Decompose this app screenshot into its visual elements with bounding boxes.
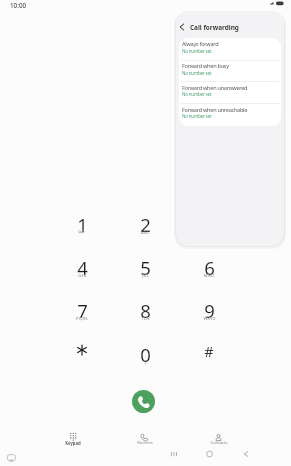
staticText: Keypad [65,440,81,446]
button[interactable] [66,338,98,362]
staticText: # [204,341,214,361]
staticText: WXYZ [203,315,216,321]
button[interactable] [129,254,161,278]
staticText: 7 [77,298,88,318]
staticText: No number set [182,48,212,54]
button[interactable] [193,297,225,321]
staticText: 1 [77,212,88,232]
button[interactable] [179,104,281,126]
button[interactable] [129,297,161,321]
staticText: 0 [140,342,151,362]
button[interactable] [66,297,98,321]
staticText: Forward when unanswered [182,84,248,92]
staticText: 6 [204,255,215,275]
staticText: 2 [140,212,151,232]
staticText: Recents [137,440,153,446]
staticText: TUV [141,315,150,321]
staticText: JKL [142,272,149,278]
button[interactable] [179,60,281,82]
staticText: + [144,359,147,365]
button[interactable] [192,338,224,362]
staticText: 9 [204,298,215,318]
button[interactable] [66,254,98,278]
button[interactable] [179,82,281,104]
button[interactable] [176,17,284,37]
button[interactable] [179,38,281,60]
staticText: GHI [78,272,87,278]
button[interactable] [66,211,98,235]
staticText: Forward when busy [182,62,229,70]
button[interactable] [132,390,155,413]
button[interactable] [239,448,255,461]
staticText: 5 [140,255,151,275]
button[interactable] [129,211,161,235]
staticText: Contacts [210,440,228,446]
staticText: 8 [140,298,151,318]
button[interactable] [202,448,218,461]
button[interactable] [193,254,225,278]
staticText: 10:00 [10,1,27,10]
staticText: No number set [182,91,212,97]
staticText: PQRS [76,315,88,321]
button[interactable] [128,429,162,448]
staticText: No number set [182,70,212,76]
staticText: Forward when unreachable [182,106,248,114]
staticText: ABC [141,229,150,235]
staticText: Call forwarding [190,23,239,32]
button[interactable] [56,429,90,448]
staticText: No number set [182,113,212,119]
button[interactable] [129,341,161,365]
button[interactable] [6,453,18,464]
staticText: Always forward [182,40,219,48]
button[interactable] [201,429,235,448]
staticText: MNO [203,272,215,278]
staticText: 4 [77,255,88,275]
button[interactable] [166,448,182,461]
